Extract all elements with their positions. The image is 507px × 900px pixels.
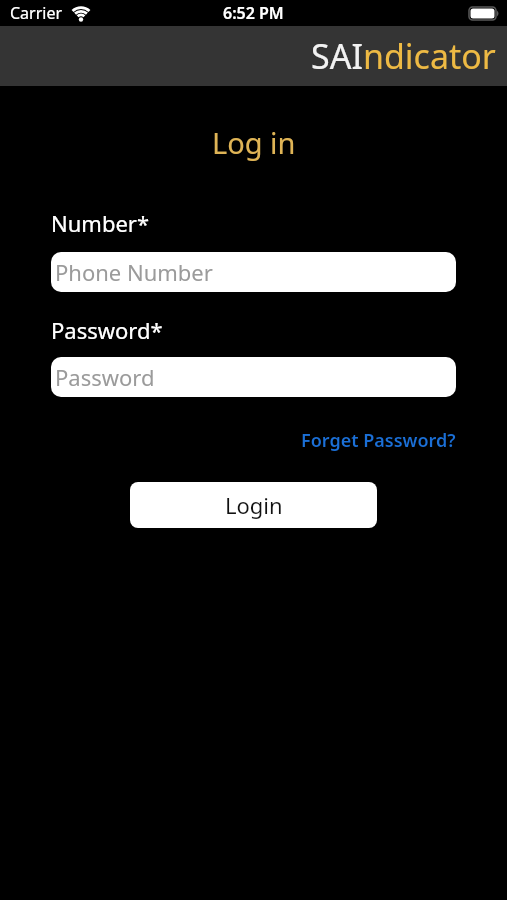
staticText: Password*	[51, 315, 163, 345]
button[interactable]: Forget Password?	[301, 428, 456, 453]
staticText: Number*	[51, 208, 150, 238]
button[interactable]: Login	[130, 482, 377, 528]
staticText: Phone Number	[55, 257, 213, 287]
staticText: Carrier	[10, 2, 63, 24]
staticText: 6:52 PM	[223, 2, 284, 24]
staticText: Login	[225, 490, 283, 520]
staticText: Password	[55, 362, 155, 392]
button[interactable]: Password	[51, 357, 456, 397]
button[interactable]: Phone Number	[51, 252, 456, 292]
staticText: Log in	[212, 123, 296, 162]
staticText: SAIndicator	[311, 33, 496, 79]
